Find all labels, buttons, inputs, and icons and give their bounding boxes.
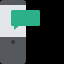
- button[interactable]: Home: [11, 40, 15, 44]
- button[interactable]: [11, 10, 40, 26]
